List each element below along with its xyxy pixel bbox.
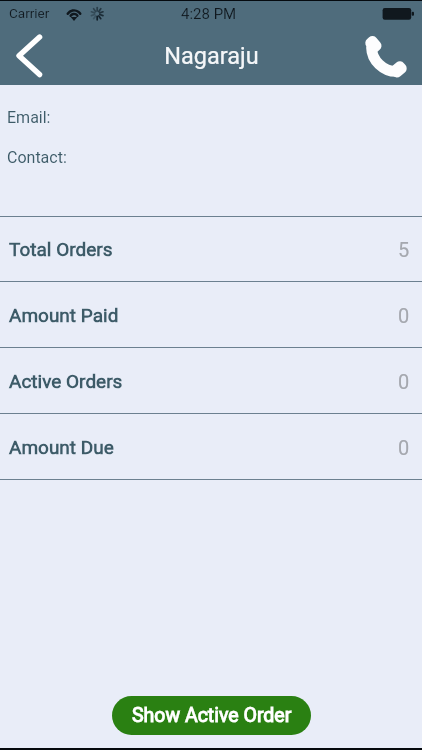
- button[interactable]: Amount Paid: [0, 282, 422, 348]
- staticText: Carrier: [9, 5, 50, 21]
- staticText: 0: [398, 370, 410, 393]
- staticText: 0: [398, 436, 410, 459]
- button[interactable]: Total Orders: [0, 216, 422, 282]
- staticText: Total Orders: [9, 238, 113, 260]
- staticText: Amount Due: [9, 436, 114, 458]
- staticText: Active Orders: [9, 370, 123, 392]
- staticText: 0: [398, 304, 410, 327]
- staticText: 5: [398, 238, 410, 261]
- button[interactable]: Active Orders: [0, 348, 422, 414]
- button[interactable]: Call: [362, 33, 410, 81]
- staticText: Contact:: [7, 148, 67, 167]
- button[interactable]: Amount Due: [0, 414, 422, 480]
- staticText: Show Active Order: [132, 704, 292, 727]
- button[interactable]: Show Active Order: [112, 696, 311, 735]
- staticText: 4:28 PM: [181, 5, 237, 23]
- button[interactable]: Back: [4, 30, 54, 80]
- staticText: Nagaraju: [164, 42, 259, 70]
- staticText: Amount Paid: [9, 304, 119, 326]
- staticText: Email:: [7, 108, 51, 127]
